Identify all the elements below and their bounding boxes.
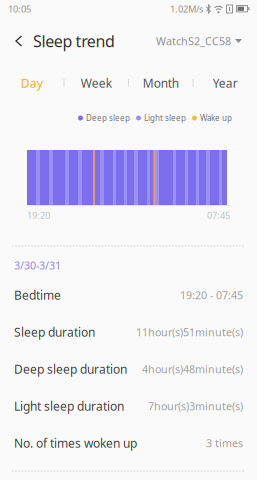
button[interactable]: Back <box>10 32 28 50</box>
staticText: Light sleep <box>144 113 186 123</box>
staticText: 3 times <box>206 436 243 450</box>
staticText: 4hour(s)48minute(s) <box>142 362 243 376</box>
staticText: Deep sleep <box>86 113 130 123</box>
staticText: Sleep duration <box>14 324 95 340</box>
staticText: 3/30-3/31 <box>14 258 61 273</box>
staticText: Wake up <box>200 113 232 123</box>
staticText: 07:45 <box>207 209 230 221</box>
staticText: Month <box>143 75 179 91</box>
button[interactable]: Year <box>193 75 257 91</box>
staticText: 10:05 <box>8 3 31 15</box>
staticText: Light sleep duration <box>14 398 124 414</box>
button[interactable]: Day <box>0 75 63 91</box>
staticText: Deep sleep duration <box>14 361 127 377</box>
staticText: WatchS2_CC58 <box>156 34 231 48</box>
button[interactable]: Select device <box>156 34 242 48</box>
staticText: 19:20 - 07:45 <box>180 288 243 302</box>
staticText: No. of times woken up <box>14 435 137 451</box>
staticText: 1.02M/s <box>170 3 203 15</box>
staticText: Day <box>21 75 43 91</box>
staticText: Sleep trend <box>33 30 115 52</box>
button[interactable]: Week <box>64 75 128 91</box>
button[interactable]: Month <box>129 75 192 91</box>
staticText: 19:20 <box>27 209 50 221</box>
staticText: 7hour(s)3minute(s) <box>148 399 243 413</box>
staticText: 11hour(s)51minute(s) <box>136 325 243 339</box>
staticText: Bedtime <box>14 287 61 303</box>
staticText: Week <box>81 75 112 91</box>
staticText: Year <box>213 75 238 91</box>
